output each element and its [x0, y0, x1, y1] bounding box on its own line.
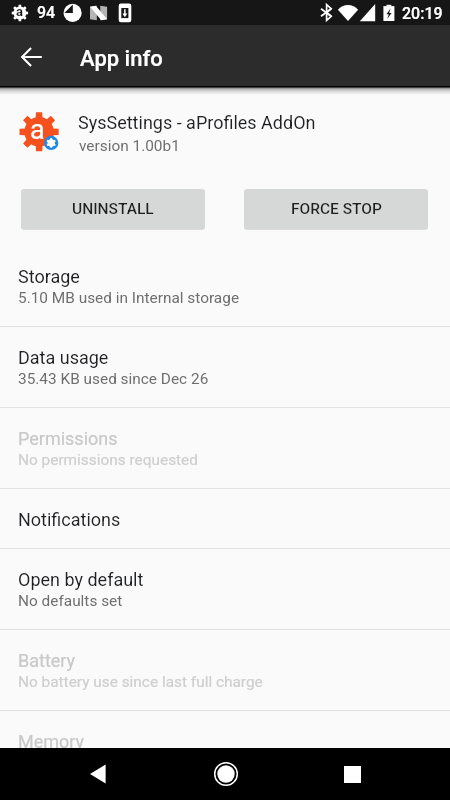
staticText: App info [80, 46, 163, 72]
button[interactable]: Notifications [0, 489, 450, 548]
button[interactable]: FORCE STOP [244, 189, 428, 229]
button[interactable]: Memory [0, 711, 450, 791]
staticText: 35.43 KB used since Dec 26 [18, 370, 209, 388]
button[interactable]: Permissions [0, 408, 450, 488]
button[interactable]: Open by default [0, 549, 450, 629]
staticText: a [30, 114, 45, 146]
staticText: Battery [18, 650, 76, 671]
button[interactable]: Back [73, 750, 121, 798]
button[interactable]: Battery [0, 630, 450, 710]
staticText: 20:19 [402, 4, 443, 23]
button[interactable]: Storage [0, 246, 450, 326]
staticText: UNINSTALL [72, 200, 154, 218]
button[interactable]: Navigate up [11, 36, 53, 78]
staticText: Open by default [18, 569, 144, 590]
staticText: FORCE STOP [291, 200, 382, 218]
staticText: 5.10 MB used in Internal storage [18, 289, 240, 307]
staticText: No permissions requested [18, 451, 198, 469]
staticText: Notifications [18, 509, 121, 530]
staticText: SysSettings - aProfiles AddOn [78, 112, 316, 133]
staticText: 94 [37, 3, 56, 22]
button[interactable]: Recent apps [328, 750, 376, 798]
staticText: Avg. 30 MB used in last 3 hours [18, 754, 233, 772]
button[interactable]: UNINSTALL [21, 189, 205, 229]
staticText: Permissions [18, 428, 118, 449]
staticText: Storage [18, 266, 80, 287]
button[interactable]: Data usage [0, 327, 450, 407]
staticText: No battery use since last full charge [18, 673, 263, 691]
button[interactable]: Home [202, 750, 250, 798]
staticText: Data usage [18, 347, 109, 368]
staticText: version 1.00b1 [79, 137, 180, 155]
staticText: Memory [18, 731, 85, 752]
staticText: a [16, 4, 23, 19]
staticText: No defaults set [18, 592, 123, 610]
